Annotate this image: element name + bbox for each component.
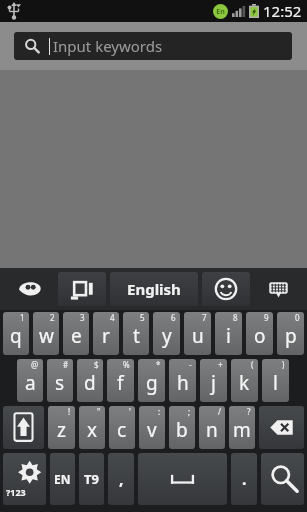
staticText: #: [63, 359, 69, 370]
button[interactable]: w: [33, 312, 59, 355]
button[interactable]: h: [169, 359, 196, 402]
staticText: .: [242, 468, 247, 490]
button[interactable]: Backspace: [259, 406, 304, 449]
staticText: r: [102, 323, 110, 349]
staticText: @: [31, 359, 39, 370]
button[interactable]: o: [246, 312, 273, 355]
button[interactable]: g: [138, 359, 165, 402]
button[interactable]: s: [47, 359, 73, 402]
staticText: %: [123, 359, 130, 370]
staticText: ,: [119, 468, 124, 490]
button[interactable]: Theme: [3, 272, 56, 306]
staticText: w: [39, 323, 54, 349]
button[interactable]: r: [93, 312, 119, 355]
button[interactable]: m: [229, 406, 255, 449]
button[interactable]: e: [63, 312, 89, 355]
staticText: +: [218, 359, 223, 370]
staticText: p: [285, 323, 297, 349]
staticText: n: [206, 417, 218, 443]
button[interactable]: Shift: [3, 406, 44, 449]
staticText: 5: [140, 312, 145, 323]
staticText: EN: [54, 471, 71, 487]
button[interactable]: u: [184, 312, 211, 355]
staticText: $: [94, 359, 99, 370]
button[interactable]: x: [79, 406, 105, 449]
staticText: i: [226, 323, 231, 349]
button[interactable]: p: [277, 312, 304, 355]
staticText: g: [146, 370, 158, 396]
staticText: b: [176, 417, 188, 443]
staticText: ): [282, 359, 285, 370]
staticText: ;: [188, 406, 191, 417]
staticText: t: [133, 323, 140, 349]
button[interactable]: c: [109, 406, 135, 449]
button[interactable]: Symbols and settings: [3, 453, 46, 505]
staticText: k: [239, 370, 250, 396]
staticText: ': [129, 406, 131, 417]
staticText: x: [87, 417, 98, 443]
staticText: e: [71, 323, 82, 349]
button[interactable]: Input keywords: [14, 32, 292, 60]
staticText: ?123: [6, 486, 26, 498]
staticText: o: [254, 323, 266, 349]
button[interactable]: i: [215, 312, 242, 355]
staticText: s: [55, 370, 65, 396]
button[interactable]: f: [107, 359, 134, 402]
staticText: h: [177, 370, 189, 396]
staticText: En: [216, 7, 225, 17]
staticText: 3: [80, 312, 85, 323]
button[interactable]: k: [231, 359, 258, 402]
button[interactable]: a: [17, 359, 43, 402]
staticText: T9: [84, 470, 99, 488]
staticText: 6: [171, 312, 176, 323]
staticText: ": [97, 406, 101, 417]
button[interactable]: t: [123, 312, 149, 355]
staticText: *: [156, 359, 161, 370]
button[interactable]: v: [139, 406, 165, 449]
staticText: c: [117, 417, 127, 443]
staticText: 8: [233, 312, 238, 323]
staticText: f: [117, 370, 124, 396]
button[interactable]: Keyboard layout: [252, 272, 304, 306]
staticText: (: [251, 359, 254, 370]
staticText: 7: [202, 312, 207, 323]
staticText: q: [10, 323, 22, 349]
staticText: 0: [295, 312, 300, 323]
staticText: 12:52: [263, 1, 302, 21]
button[interactable]: d: [77, 359, 103, 402]
staticText: d: [84, 370, 96, 396]
staticText: -: [189, 359, 192, 370]
staticText: 4: [110, 312, 115, 323]
staticText: z: [57, 417, 66, 443]
staticText: m: [233, 417, 251, 443]
button[interactable]: j: [200, 359, 227, 402]
button[interactable]: EN: [50, 453, 75, 505]
staticText: j: [211, 370, 216, 396]
button[interactable]: English: [110, 272, 198, 306]
button[interactable]: b: [169, 406, 195, 449]
button[interactable]: Search: [261, 453, 304, 505]
staticText: English: [127, 279, 181, 299]
staticText: ?: [247, 406, 251, 417]
button[interactable]: n: [199, 406, 225, 449]
staticText: v: [147, 417, 157, 443]
staticText: !: [68, 406, 71, 417]
button[interactable]: ,: [108, 453, 134, 505]
button[interactable]: T9: [79, 453, 104, 505]
staticText: u: [192, 323, 204, 349]
staticText: :: [158, 406, 161, 417]
button[interactable]: q: [3, 312, 29, 355]
staticText: 2: [50, 312, 55, 323]
button[interactable]: Space: [138, 453, 227, 505]
button[interactable]: y: [153, 312, 180, 355]
staticText: y: [162, 323, 172, 349]
button[interactable]: z: [48, 406, 75, 449]
button[interactable]: .: [231, 453, 257, 505]
staticText: 9: [264, 312, 269, 323]
staticText: l: [273, 370, 278, 396]
staticText: a: [25, 370, 36, 396]
button[interactable]: l: [262, 359, 289, 402]
staticText: /: [218, 406, 221, 417]
button[interactable]: Emoji: [202, 272, 250, 306]
button[interactable]: Clipboard: [58, 272, 106, 306]
